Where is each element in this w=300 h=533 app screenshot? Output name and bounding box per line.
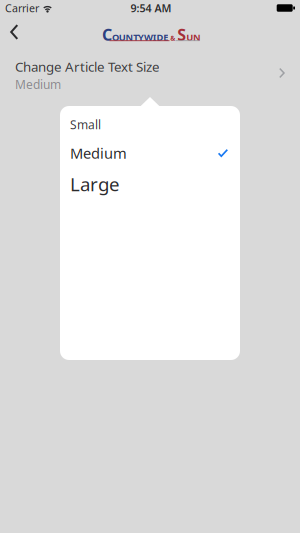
staticText: S [177, 24, 186, 45]
button[interactable]: Large [60, 163, 240, 205]
staticText: Small [70, 116, 101, 132]
staticText: UN [186, 31, 201, 43]
button[interactable]: Change Article Text Size [0, 49, 300, 97]
staticText: Large [70, 172, 120, 196]
button[interactable]: Medium [60, 143, 240, 163]
staticText: Carrier [5, 1, 39, 15]
staticText: OUNTYWIDE [112, 31, 168, 43]
staticText: Change Article Text Size [15, 58, 160, 75]
staticText: C [102, 24, 112, 45]
button[interactable]: Small [60, 106, 240, 143]
staticText: 9:54 AM [130, 1, 171, 15]
button[interactable]: Back [0, 17, 30, 47]
staticText: Medium [70, 143, 127, 163]
staticText: & [168, 34, 177, 43]
staticText: Medium [15, 76, 61, 92]
